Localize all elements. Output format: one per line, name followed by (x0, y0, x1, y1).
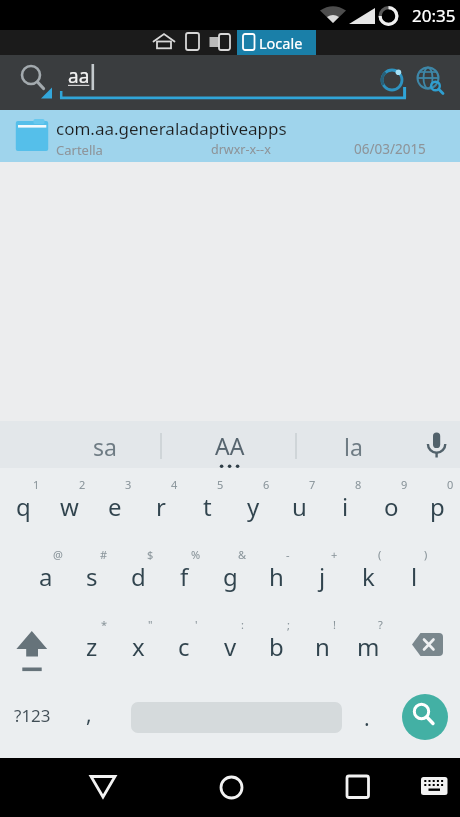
button[interactable] (334, 758, 382, 817)
staticText: i (342, 490, 349, 523)
button[interactable]: com.aa.generaladaptiveapps (0, 110, 460, 162)
button[interactable]: ' (161, 611, 207, 681)
button[interactable]: 7 (276, 471, 322, 541)
button[interactable] (410, 758, 460, 817)
staticText: ! (333, 617, 336, 632)
button[interactable] (408, 55, 460, 110)
button[interactable]: sa (0, 421, 161, 468)
button[interactable]: AA (161, 421, 296, 468)
staticText: 06/03/2015 (354, 140, 426, 158)
staticText: ?123 (14, 704, 51, 727)
staticText: la (344, 431, 363, 462)
staticText: f (180, 560, 189, 593)
staticText: " (148, 617, 153, 632)
button[interactable]: ?123 (0, 681, 64, 751)
staticText: y (247, 490, 260, 523)
staticText: - (286, 547, 290, 562)
button[interactable] (150, 30, 235, 55)
staticText: AA (215, 430, 245, 461)
button[interactable]: la (296, 421, 410, 468)
staticText: @ (53, 547, 63, 562)
button[interactable]: 1 (0, 471, 46, 541)
staticText: % (191, 547, 201, 562)
button[interactable] (0, 611, 69, 681)
staticText: ) (424, 547, 428, 562)
button[interactable]: ? (345, 611, 391, 681)
button[interactable]: 5 (184, 471, 230, 541)
staticText: g (223, 560, 238, 593)
staticText: 2 (79, 477, 86, 492)
button[interactable]: : (207, 611, 253, 681)
staticText: o (384, 490, 399, 523)
staticText: n (315, 630, 330, 663)
button[interactable]: " (115, 611, 161, 681)
button[interactable]: @ (23, 541, 69, 611)
button[interactable]: 3 (92, 471, 138, 541)
button[interactable]: , (64, 681, 113, 751)
button[interactable]: $ (115, 541, 161, 611)
button[interactable]: ; (253, 611, 299, 681)
button[interactable]: 6 (230, 471, 276, 541)
staticText: z (86, 630, 98, 663)
staticText: b (269, 630, 284, 663)
staticText: * (101, 617, 108, 632)
button[interactable]: * (69, 611, 115, 681)
staticText: ' (195, 617, 198, 632)
staticText: ( (378, 547, 382, 562)
button[interactable] (207, 758, 255, 817)
staticText: u (292, 490, 307, 523)
button[interactable]: 2 (46, 471, 92, 541)
button[interactable]: - (253, 541, 299, 611)
staticText: h (269, 560, 284, 593)
staticText: d (131, 560, 146, 593)
staticText: aa (68, 63, 90, 89)
button[interactable]: 9 (368, 471, 414, 541)
button[interactable]: ) (391, 541, 437, 611)
staticText: s (86, 560, 98, 593)
staticText: & (238, 547, 247, 562)
staticText: 20:35 (412, 4, 456, 27)
staticText: sa (93, 431, 117, 462)
staticText: 0 (447, 477, 454, 492)
button[interactable]: 4 (138, 471, 184, 541)
button[interactable] (55, 55, 375, 110)
button[interactable] (402, 694, 448, 740)
staticText: , (86, 700, 92, 729)
staticText: j (319, 560, 326, 593)
button[interactable]: . (342, 681, 391, 751)
button[interactable] (391, 611, 460, 681)
staticText: 4 (171, 477, 178, 492)
staticText: w (60, 490, 79, 523)
staticText: q (16, 490, 31, 523)
staticText: v (224, 630, 237, 663)
button[interactable]: Locale (237, 30, 316, 55)
button[interactable]: # (69, 541, 115, 611)
staticText: 3 (125, 477, 132, 492)
button[interactable]: ( (345, 541, 391, 611)
staticText: e (108, 490, 122, 523)
staticText: c (178, 630, 190, 663)
staticText: t (203, 490, 212, 523)
button[interactable]: & (207, 541, 253, 611)
staticText: : (241, 617, 244, 632)
staticText: m (357, 630, 380, 663)
staticText: # (100, 547, 108, 562)
staticText: $ (147, 547, 154, 562)
button[interactable]: ! (299, 611, 345, 681)
button[interactable]: + (299, 541, 345, 611)
staticText: 7 (309, 477, 316, 492)
staticText: . (364, 704, 370, 733)
button[interactable]: 8 (322, 471, 368, 541)
button[interactable] (410, 421, 460, 468)
staticText: r (156, 490, 166, 523)
staticText: 9 (401, 477, 408, 492)
button[interactable] (0, 55, 55, 110)
button[interactable] (79, 758, 127, 817)
staticText: 1 (33, 477, 40, 492)
button[interactable]: 0 (414, 471, 460, 541)
staticText: Locale (259, 33, 303, 53)
button[interactable]: % (161, 541, 207, 611)
staticText: Cartella (56, 141, 103, 159)
staticText: p (430, 490, 445, 523)
